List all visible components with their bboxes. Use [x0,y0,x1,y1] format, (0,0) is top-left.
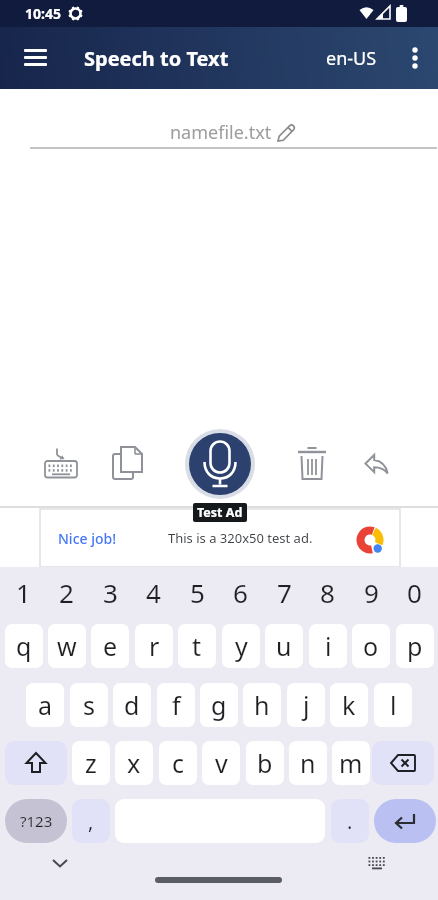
button[interactable]: 2 [46,571,87,613]
staticText: 2 [59,575,74,610]
staticText: r [149,629,160,663]
button[interactable]: f [157,683,195,727]
button[interactable]: d [113,683,151,727]
button[interactable] [5,741,67,785]
staticText: This is a 320x50 test ad. [168,529,313,547]
button[interactable]: . [331,799,369,843]
staticText: s [83,688,95,722]
staticText: y [235,629,248,663]
button[interactable]: ?123 [5,799,67,843]
button[interactable] [372,741,434,785]
staticText: v [215,746,228,780]
staticText: en-US [326,46,377,71]
button[interactable] [155,877,282,883]
button[interactable]: e [91,624,129,668]
staticText: namefile.txt [170,120,272,145]
button[interactable] [355,842,399,882]
button[interactable]: h [243,683,281,727]
staticText: u [276,629,292,663]
button[interactable]: 3 [90,571,131,613]
staticText: c [172,746,185,780]
staticText: 8 [320,575,335,610]
staticText: b [257,746,273,780]
button[interactable]: q [5,624,43,668]
button[interactable]: l [374,683,412,727]
staticText: a [38,688,53,722]
staticText: x [127,746,141,780]
staticText: Test Ad [197,504,243,521]
staticText: 4 [146,575,161,610]
button[interactable]: m [332,741,370,785]
button[interactable] [185,429,255,499]
button[interactable]: j [287,683,325,727]
staticText: o [363,629,379,663]
button[interactable]: 4 [133,571,174,613]
staticText: d [124,688,140,722]
button[interactable]: g [200,683,238,727]
staticText: , [88,808,94,835]
staticText: Nice job! [58,529,117,548]
button[interactable] [398,34,432,82]
button[interactable] [352,438,402,488]
staticText: 3 [103,575,118,610]
button[interactable]: p [396,624,434,668]
button[interactable]: t [178,624,216,668]
button[interactable]: n [289,741,327,785]
button[interactable]: s [70,683,108,727]
staticText: k [342,688,356,722]
staticText: e [103,629,118,663]
button[interactable]: y [222,624,260,668]
staticText: i [325,629,332,663]
button[interactable]: c [159,741,197,785]
button[interactable]: o [352,624,390,668]
button[interactable]: i [309,624,347,668]
staticText: 1 [16,575,31,610]
button[interactable]: k [330,683,368,727]
staticText: 10:45 [25,4,61,23]
button[interactable] [103,438,153,488]
button[interactable]: u [265,624,303,668]
button[interactable]: 6 [220,571,261,613]
staticText: m [339,746,363,780]
button[interactable] [287,438,337,488]
button[interactable]: 0 [394,571,435,613]
button[interactable]: 5 [177,571,218,613]
button[interactable]: 8 [307,571,348,613]
staticText: l [390,688,397,722]
button[interactable] [36,846,84,880]
button[interactable]: 7 [264,571,305,613]
button[interactable]: v [202,741,240,785]
button[interactable] [36,438,86,488]
staticText: ?123 [20,811,53,831]
button[interactable]: z [72,741,110,785]
button[interactable]: 1 [3,571,44,613]
button[interactable]: x [115,741,153,785]
button[interactable]: w [48,624,86,668]
button[interactable]: namefile.txt [30,89,437,151]
staticText: 9 [364,575,379,610]
button[interactable]: Nice job! [40,509,400,567]
staticText: w [57,629,77,663]
staticText: 6 [233,575,248,610]
button[interactable]: 9 [351,571,392,613]
staticText: h [254,688,270,722]
staticText: j [303,688,310,722]
button[interactable]: a [26,683,64,727]
button[interactable]: , [72,799,110,843]
staticText: 5 [190,575,205,610]
button[interactable]: en-US [316,34,386,82]
staticText: n [300,746,316,780]
staticText: . [347,808,353,835]
staticText: g [211,688,227,722]
button[interactable] [374,799,436,843]
button[interactable]: b [246,741,284,785]
button[interactable] [12,34,60,82]
staticText: p [407,629,423,663]
staticText: 7 [277,575,292,610]
button[interactable]: r [135,624,173,668]
staticText: f [172,688,181,722]
staticText: 0 [407,575,422,610]
staticText: t [192,629,202,663]
staticText: z [85,746,97,780]
